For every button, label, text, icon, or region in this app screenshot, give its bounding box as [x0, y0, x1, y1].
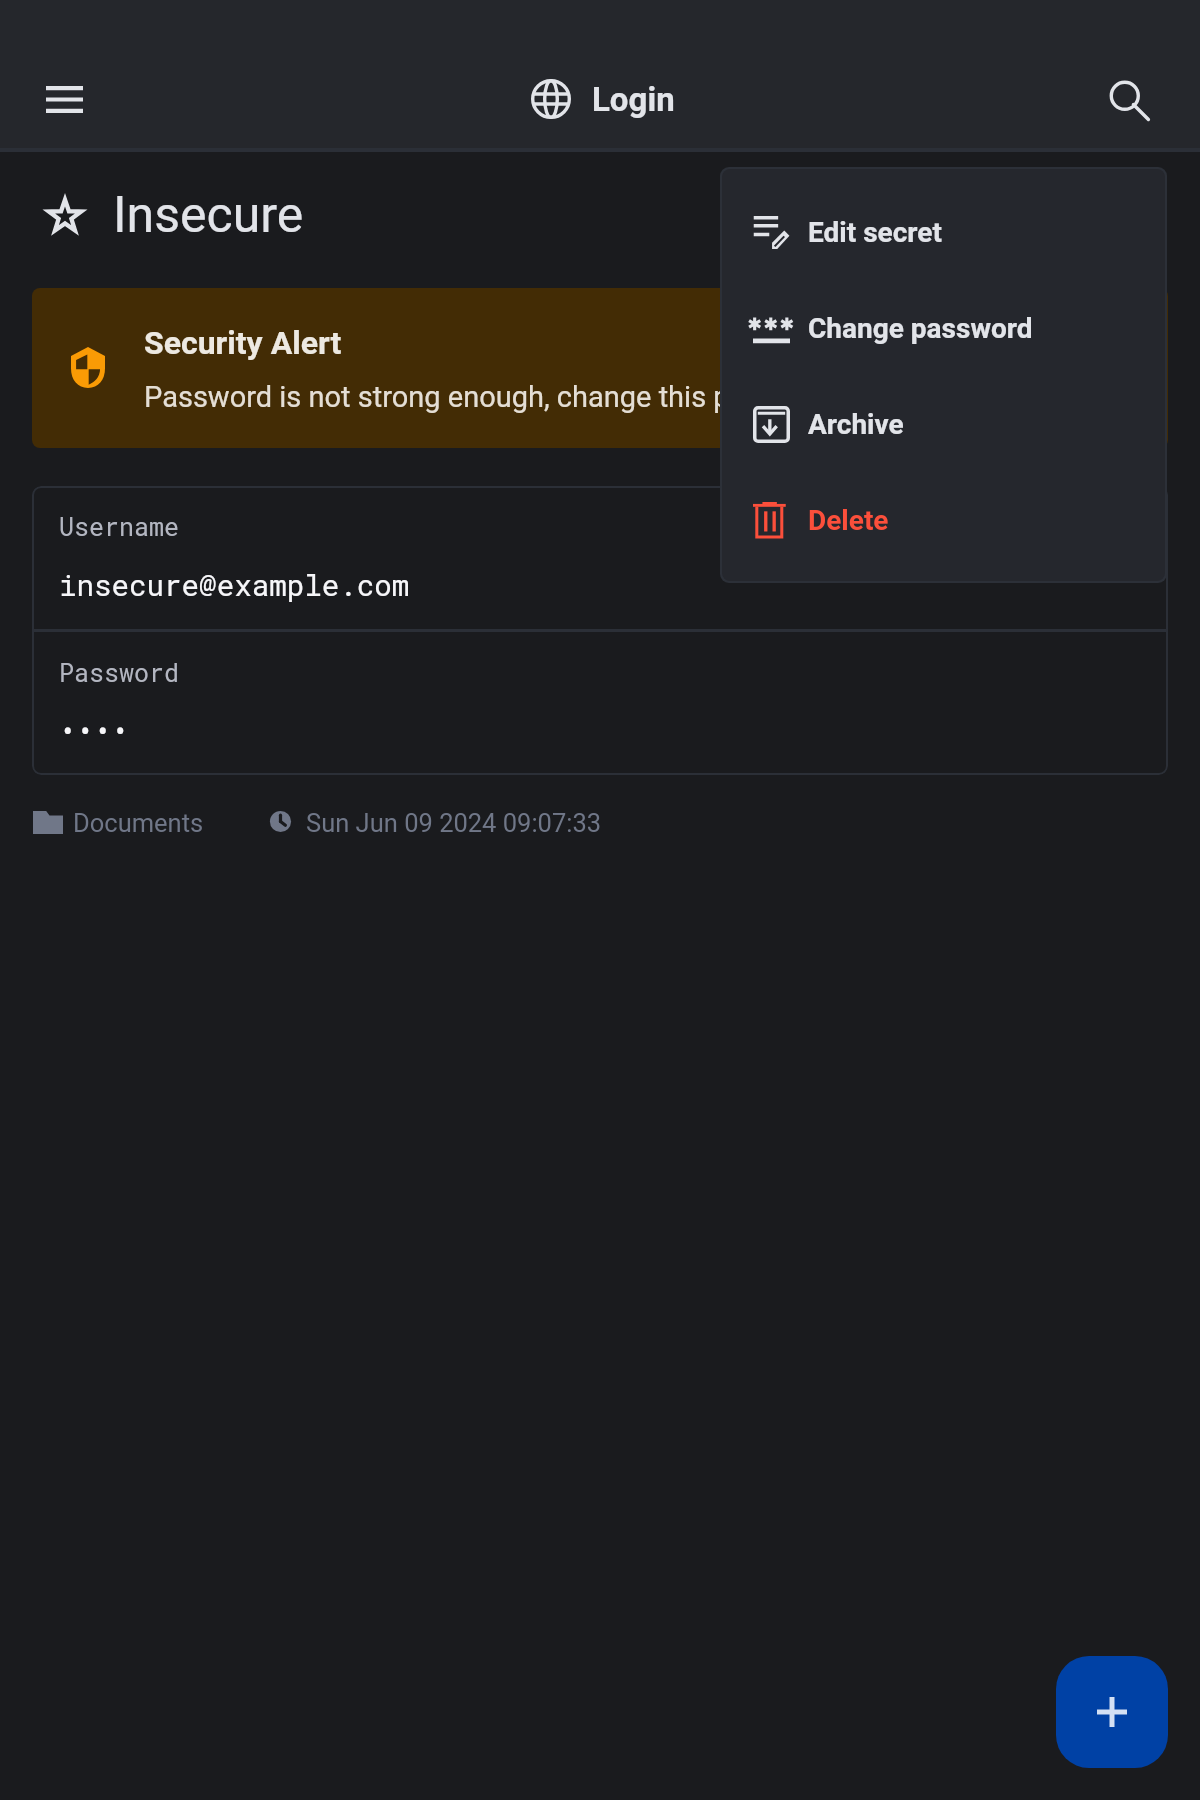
staticText: insecure@example.com — [59, 565, 410, 604]
staticText: Insecure — [113, 186, 304, 245]
button[interactable]: Search — [1092, 64, 1164, 136]
staticText: Change password — [808, 312, 1033, 345]
button[interactable]: Delete — [722, 472, 1165, 568]
button[interactable]: Password — [32, 632, 1168, 775]
staticText: Login — [592, 80, 675, 119]
staticText: Delete — [808, 504, 889, 537]
staticText: Documents — [73, 808, 204, 838]
button[interactable]: Archive — [722, 376, 1165, 472]
button[interactable]: Username — [32, 486, 1168, 629]
staticText: Password — [59, 656, 180, 689]
button[interactable]: Security Alert — [32, 288, 1168, 448]
button[interactable]: Menu — [28, 63, 100, 135]
staticText: Security Alert — [144, 324, 342, 362]
staticText: Password is not strong enough, change th… — [144, 380, 840, 414]
button[interactable]: Favorite — [32, 179, 98, 251]
staticText: Sun Jun 09 2024 09:07:33 — [306, 808, 602, 838]
staticText: Archive — [808, 408, 904, 441]
staticText: •••• — [59, 711, 130, 750]
button[interactable]: Edit secret — [722, 184, 1165, 280]
button[interactable]: Add — [1056, 1656, 1168, 1768]
staticText: Username — [59, 510, 180, 543]
button[interactable]: Change password — [722, 280, 1165, 376]
staticText: Edit secret — [808, 216, 942, 249]
